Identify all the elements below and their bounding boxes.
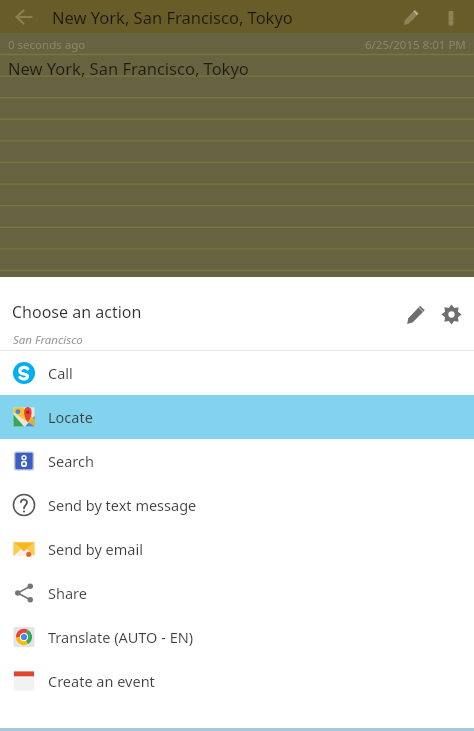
- staticText: Translate (AUTO - EN): [48, 627, 194, 647]
- button[interactable]: Settings: [434, 297, 468, 331]
- staticText: Call: [48, 363, 73, 383]
- button[interactable]: Edit: [396, 2, 426, 32]
- staticText: Send by text message: [48, 495, 197, 515]
- button[interactable]: Locate: [0, 395, 474, 439]
- staticText: Send by email: [48, 539, 143, 559]
- staticText: Search: [48, 451, 94, 471]
- button[interactable]: More options: [436, 2, 466, 32]
- button[interactable]: Call: [0, 351, 474, 395]
- staticText: Choose an action: [12, 301, 142, 323]
- button[interactable]: Create an event: [0, 659, 474, 703]
- staticText: 6/25/2015 8:01 PM: [365, 37, 466, 53]
- staticText: New York, San Francisco, Tokyo: [52, 6, 293, 28]
- staticText: 0 seconds ago: [8, 37, 86, 53]
- button[interactable]: Translate (AUTO - EN): [0, 615, 474, 659]
- button[interactable]: Search: [0, 439, 474, 483]
- staticText: New York, San Francisco, Tokyo: [8, 57, 249, 79]
- button[interactable]: Share: [0, 571, 474, 615]
- staticText: San Francisco: [13, 332, 83, 348]
- button[interactable]: Edit action: [398, 297, 432, 331]
- staticText: Locate: [48, 407, 93, 427]
- button[interactable]: Back: [6, 0, 40, 33]
- button[interactable]: Send by email: [0, 527, 474, 571]
- button[interactable]: Send by text message: [0, 483, 474, 527]
- staticText: Share: [48, 583, 87, 603]
- staticText: Create an event: [48, 671, 155, 691]
